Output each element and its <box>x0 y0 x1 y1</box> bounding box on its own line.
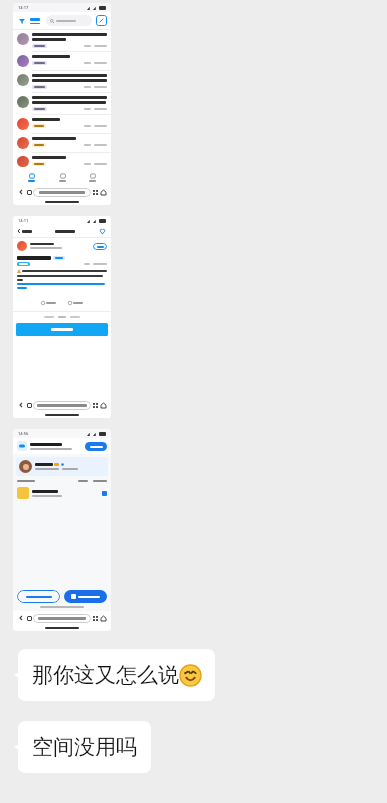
button[interactable] <box>13 71 111 92</box>
button[interactable]: Favorite <box>98 227 107 236</box>
button[interactable] <box>13 93 111 114</box>
button[interactable]: Apps <box>91 188 99 196</box>
button[interactable]: 14:17 <box>13 3 111 205</box>
button[interactable]: Apps <box>91 401 99 409</box>
button[interactable] <box>33 188 91 197</box>
button[interactable] <box>16 323 108 336</box>
staticText: 14:11 <box>18 218 29 223</box>
button[interactable]: Profile <box>81 172 104 183</box>
button[interactable] <box>13 134 111 152</box>
button[interactable]: 那你这又怎么说 <box>18 649 215 701</box>
button[interactable]: Back <box>17 401 25 409</box>
button[interactable]: Collect <box>35 301 62 305</box>
button[interactable] <box>13 153 111 170</box>
button[interactable]: Tabs <box>25 401 33 409</box>
button[interactable]: Home <box>20 172 43 183</box>
button[interactable] <box>28 18 42 24</box>
button[interactable]: Filter <box>17 16 26 25</box>
button[interactable] <box>13 52 111 70</box>
button[interactable]: 空间没用吗 <box>18 721 151 773</box>
button[interactable] <box>33 401 91 410</box>
button[interactable] <box>46 15 92 26</box>
button[interactable] <box>13 238 111 254</box>
button[interactable] <box>93 243 107 250</box>
button[interactable] <box>64 590 107 603</box>
button[interactable] <box>13 115 111 133</box>
button[interactable] <box>17 590 60 603</box>
button[interactable] <box>85 442 107 451</box>
staticText: 空间没用吗 <box>32 734 137 760</box>
button[interactable] <box>13 485 111 501</box>
staticText: 14:56 <box>18 431 29 436</box>
button[interactable]: 14:56 <box>13 429 111 631</box>
button[interactable]: Home <box>99 614 107 622</box>
button[interactable] <box>13 30 111 51</box>
button[interactable]: Home <box>99 401 107 409</box>
staticText: 14:17 <box>18 5 29 10</box>
button[interactable]: Back <box>17 614 25 622</box>
button[interactable]: Apps <box>91 614 99 622</box>
button[interactable] <box>16 457 108 476</box>
button[interactable]: Home <box>99 188 107 196</box>
button[interactable]: Like <box>62 301 89 305</box>
button[interactable]: Messages <box>51 172 74 183</box>
staticText: 那你这又怎么说 <box>32 662 179 688</box>
button[interactable]: Compose <box>96 15 107 26</box>
button[interactable]: Back <box>17 188 25 196</box>
button[interactable]: Tabs <box>25 614 33 622</box>
button[interactable]: Back <box>17 229 32 233</box>
button[interactable]: Tabs <box>25 188 33 196</box>
button[interactable]: 14:11 <box>13 216 111 418</box>
button[interactable] <box>33 614 91 623</box>
